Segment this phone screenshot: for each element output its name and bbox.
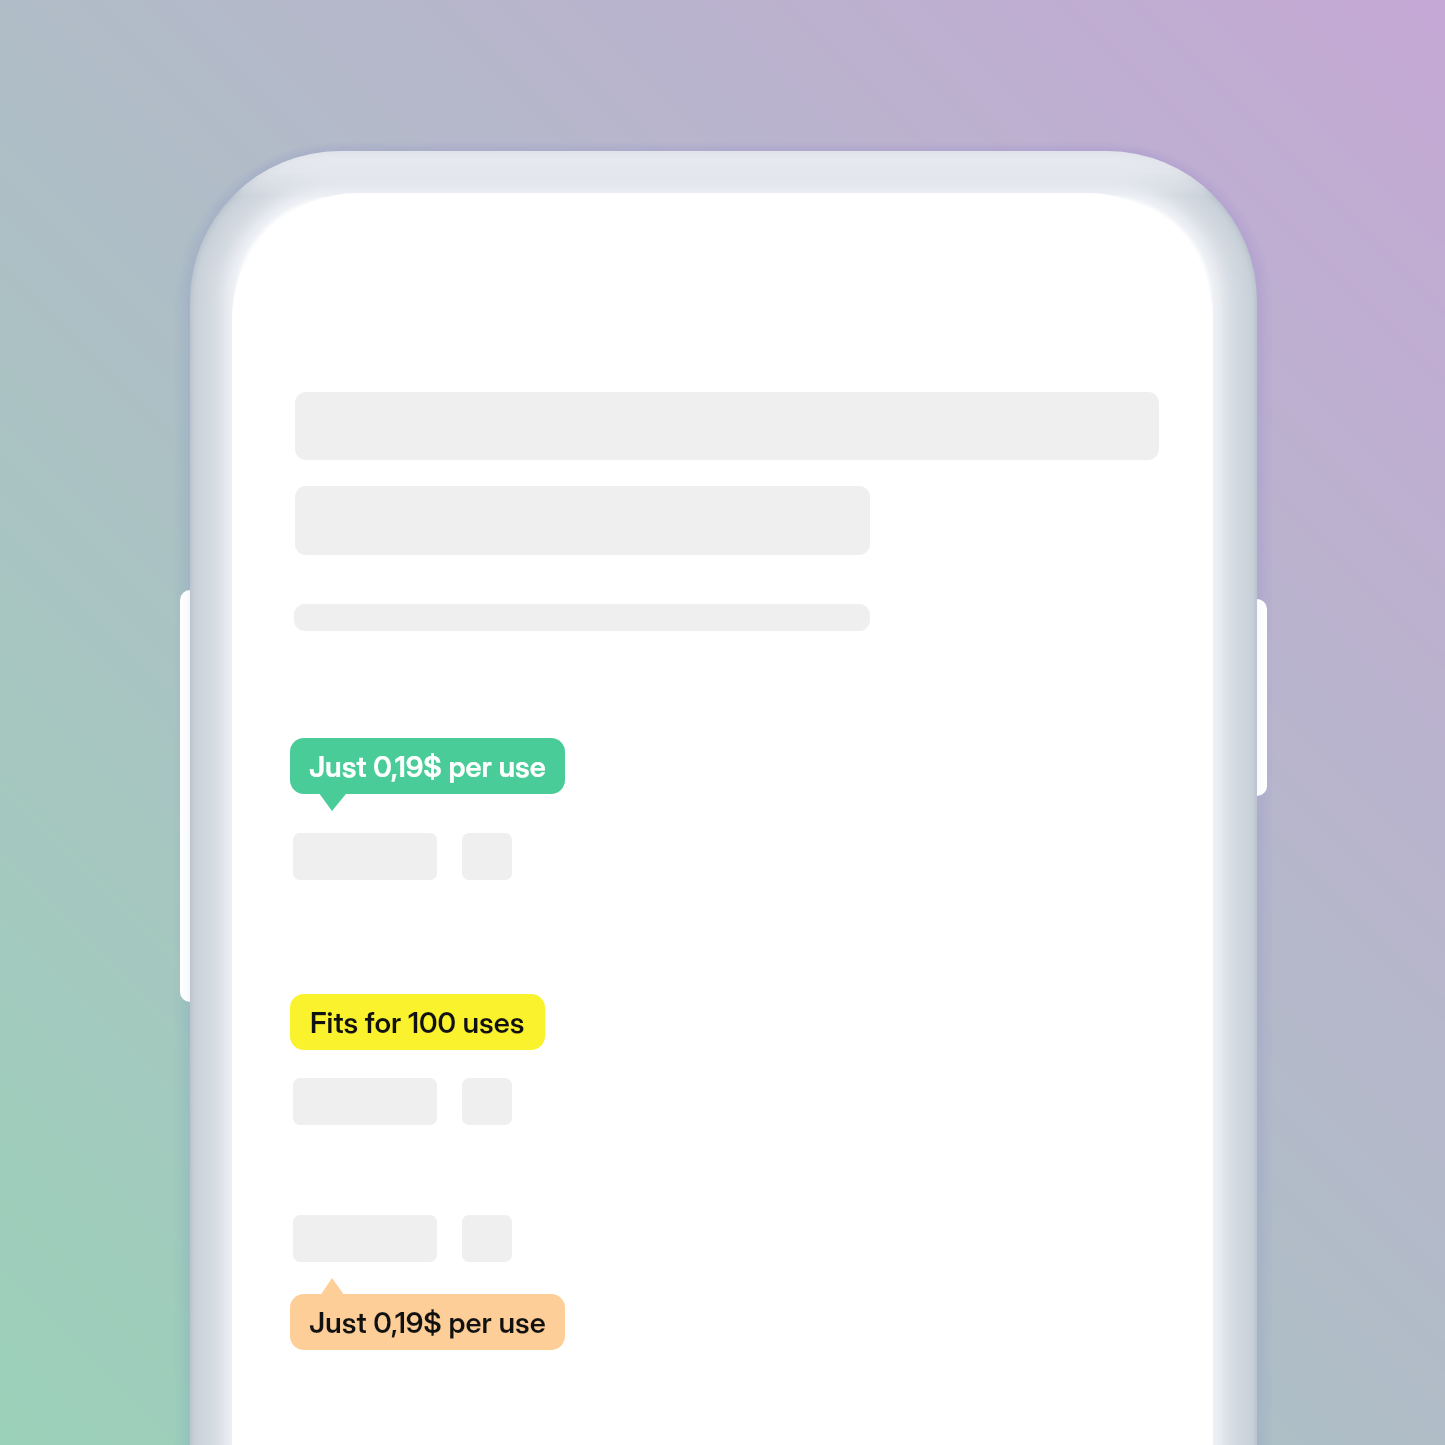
button[interactable]: Just 0,19$ per use (290, 714, 565, 818)
button[interactable]: Just 0,19$ per use (290, 1270, 565, 1374)
staticText: Just 0,19$ per use (309, 749, 546, 784)
staticText: Just 0,19$ per use (309, 1305, 546, 1340)
staticText: Fits for 100 uses (310, 1005, 525, 1040)
button[interactable]: Fits for 100 uses (290, 970, 545, 1074)
